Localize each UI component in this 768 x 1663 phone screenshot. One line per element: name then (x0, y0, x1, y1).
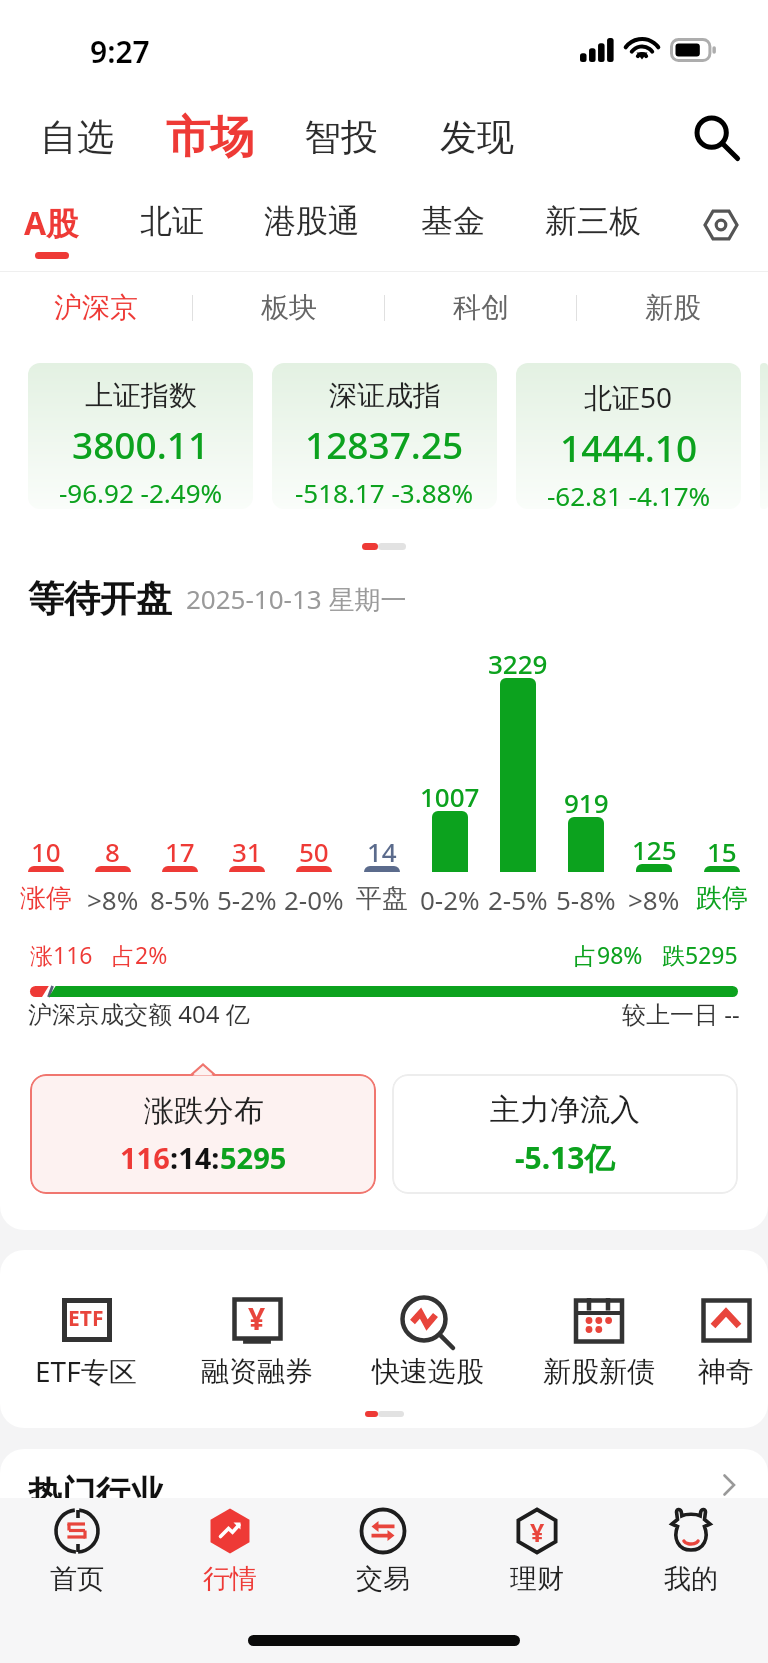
staticText: 神奇 (698, 1354, 754, 1389)
staticText: ETF专区 (35, 1352, 137, 1390)
staticText: 较上一日 -- (622, 997, 740, 1030)
button[interactable]: 智投 (298, 104, 384, 171)
staticText: 31 (232, 834, 262, 869)
staticText: 北证 (140, 201, 204, 241)
staticText: 快速选股 (372, 1354, 484, 1389)
staticText: 5-8% (556, 882, 616, 917)
staticText: 理财 (510, 1562, 564, 1596)
staticText: 主力净流入 (490, 1091, 640, 1129)
button[interactable]: 板块 (193, 272, 384, 343)
staticText: 919 (564, 785, 609, 820)
button[interactable] (760, 363, 768, 509)
button[interactable]: Search (688, 109, 744, 165)
staticText: 自选 (40, 114, 114, 161)
staticText: 我的 (664, 1562, 718, 1596)
staticText: 1007 (420, 779, 480, 814)
staticText: -62.81 -4.17% (547, 478, 711, 509)
button[interactable]: 神奇 (684, 1298, 768, 1389)
button[interactable]: 港股通 (264, 182, 360, 271)
staticText: 占98% (574, 939, 643, 970)
staticText: 5295 (220, 1138, 287, 1177)
staticText: 涨跌分布 (144, 1092, 264, 1130)
staticText: 沪深京 (54, 290, 138, 325)
staticText: 交易 (356, 1562, 410, 1596)
staticText: 热门行业 (28, 1472, 164, 1498)
staticText: 平盘 (356, 882, 408, 915)
staticText: 涨停 (20, 882, 72, 915)
staticText: 9:27 (90, 31, 150, 72)
staticText: ¥ (530, 1515, 545, 1549)
staticText: 等待开盘 (28, 576, 172, 621)
button[interactable]: ¥ (460, 1498, 614, 1606)
staticText: 5-2% (217, 882, 277, 917)
staticText: -518.17 -3.88% (295, 475, 474, 509)
button[interactable]: 沪深京 (0, 272, 192, 343)
button[interactable]: 上证指数 (28, 363, 253, 509)
staticText: 智投 (304, 114, 378, 161)
button[interactable]: 市场 (160, 100, 260, 175)
button[interactable]: Settings (702, 182, 740, 271)
button[interactable]: 主力净流入 (392, 1074, 738, 1194)
staticText: 新股 (645, 290, 701, 325)
button[interactable]: 自选 (34, 104, 120, 171)
staticText: >8% (628, 882, 680, 917)
button[interactable]: 新股 (577, 272, 768, 343)
staticText: 17 (165, 834, 195, 869)
staticText: 融资融券 (201, 1354, 313, 1389)
button[interactable]: 基金 (421, 182, 485, 271)
staticText: 上证指数 (85, 378, 197, 413)
button[interactable]: 交易 (306, 1498, 460, 1606)
staticText: 新三板 (545, 201, 641, 241)
staticText: 跌停 (696, 882, 748, 915)
button[interactable]: 快速选股 (342, 1298, 513, 1389)
staticText: 1444.10 (560, 422, 698, 472)
staticText: 10 (31, 834, 61, 869)
button[interactable]: 新三板 (545, 182, 641, 271)
staticText: 新股新债 (543, 1354, 655, 1389)
button[interactable]: 行情 (153, 1498, 306, 1606)
button[interactable]: 北证 (140, 182, 204, 271)
staticText: 2-0% (284, 882, 344, 917)
staticText: 125 (632, 832, 677, 867)
staticText: 市场 (166, 110, 254, 165)
staticText: 科创 (453, 290, 509, 325)
button[interactable]: 北证50 (516, 363, 741, 509)
staticText: 发现 (440, 114, 514, 161)
staticText: 基金 (421, 201, 485, 241)
staticText: 涨116 (30, 939, 93, 970)
staticText: -96.92 -2.49% (59, 475, 223, 509)
staticText: -5.13亿 (515, 1137, 615, 1178)
staticText: 北证50 (584, 378, 673, 416)
staticText: >8% (87, 882, 139, 917)
staticText: :14: (170, 1138, 220, 1177)
staticText: A股 (24, 201, 79, 245)
button[interactable]: 新股新债 (513, 1298, 684, 1389)
staticText: 50 (299, 834, 329, 869)
staticText: 行情 (203, 1562, 257, 1596)
staticText: 3229 (488, 646, 548, 681)
button[interactable]: ETF (0, 1298, 171, 1390)
staticText: 港股通 (264, 201, 360, 241)
staticText: 8 (105, 834, 120, 869)
staticText: 深证成指 (329, 378, 441, 413)
button[interactable]: ¥ (171, 1298, 342, 1389)
staticText: ETF (68, 1304, 104, 1333)
staticText: 15 (707, 834, 737, 869)
staticText: 8-5% (150, 882, 210, 917)
button[interactable]: 深证成指 (272, 363, 497, 509)
button[interactable]: 涨跌分布 (30, 1074, 376, 1194)
staticText: 116 (120, 1138, 170, 1177)
staticText: 12837.25 (305, 419, 464, 469)
button[interactable]: 热门行业 (28, 1472, 737, 1498)
button[interactable]: 发现 (434, 104, 520, 171)
button[interactable]: 我的 (614, 1498, 768, 1606)
staticText: 占2% (112, 939, 168, 970)
staticText: 3800.11 (72, 419, 210, 469)
staticText: ¥ (248, 1298, 266, 1339)
staticText: 2-5% (488, 882, 548, 917)
button[interactable]: 科创 (385, 272, 576, 343)
staticText: 板块 (261, 290, 317, 325)
staticText: 跌5295 (662, 939, 738, 970)
button[interactable]: A股 (24, 182, 79, 271)
button[interactable]: 首页 (0, 1498, 153, 1606)
